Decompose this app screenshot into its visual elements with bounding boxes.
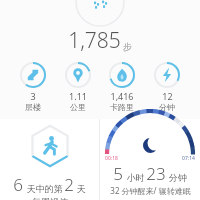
staticText: 23: [146, 162, 166, 185]
staticText: 07:14: [182, 155, 195, 162]
staticText: 步: [123, 41, 132, 52]
staticText: 6: [13, 173, 23, 196]
staticText: 公里: [70, 102, 86, 112]
staticText: 3: [30, 90, 36, 102]
staticText: 分钟: [159, 102, 175, 112]
button[interactable]: Distance: [64, 62, 92, 112]
staticText: 层楼: [25, 102, 41, 112]
button[interactable]: Floors climbed: [19, 62, 47, 112]
staticText: 2: [64, 173, 74, 196]
button[interactable]: Active minutes: [153, 62, 181, 112]
button[interactable]: 00:18: [100, 119, 200, 200]
staticText: 1,416: [110, 90, 134, 102]
staticText: 分钟: [166, 171, 187, 183]
staticText: 1.11: [69, 90, 87, 102]
button[interactable]: Calories: [108, 62, 136, 112]
button[interactable]: Step goal ring: [0, 0, 200, 26]
staticText: 5: [113, 162, 123, 185]
staticText: 天: [74, 182, 86, 194]
staticText: 小时: [123, 171, 146, 183]
staticText: 卡路里: [110, 102, 134, 112]
button[interactable]: 6: [0, 119, 99, 200]
staticText: 00:18: [105, 155, 118, 162]
staticText: 每周锻炼: [32, 196, 68, 200]
button[interactable]: 1,785: [68, 26, 132, 55]
staticText: 12: [162, 90, 173, 102]
staticText: 32 分钟醒来/ 辗转难眠: [110, 185, 191, 196]
staticText: 天中的第: [23, 182, 64, 194]
staticText: 1,785: [68, 26, 121, 55]
